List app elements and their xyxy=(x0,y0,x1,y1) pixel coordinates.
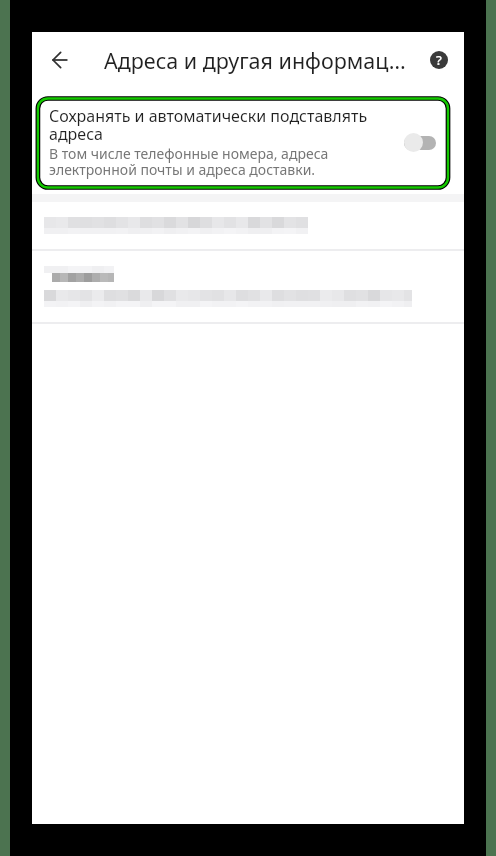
button[interactable]: Сохранять и автоматически подставлять xyxy=(32,94,464,192)
staticText: адреса xyxy=(49,123,103,145)
staticText: электронной почты и адреса доставки. xyxy=(49,160,316,179)
button[interactable] xyxy=(32,250,464,322)
staticText: Адреса и другая информац… xyxy=(104,46,406,75)
button[interactable] xyxy=(32,202,464,249)
staticText: В том числе телефонные номера, адреса xyxy=(49,144,329,163)
staticText: ? xyxy=(436,51,442,69)
staticText: Сохранять и автоматически подставлять xyxy=(49,105,368,127)
button[interactable]: Back xyxy=(32,32,88,88)
button[interactable]: Help xyxy=(415,36,463,84)
